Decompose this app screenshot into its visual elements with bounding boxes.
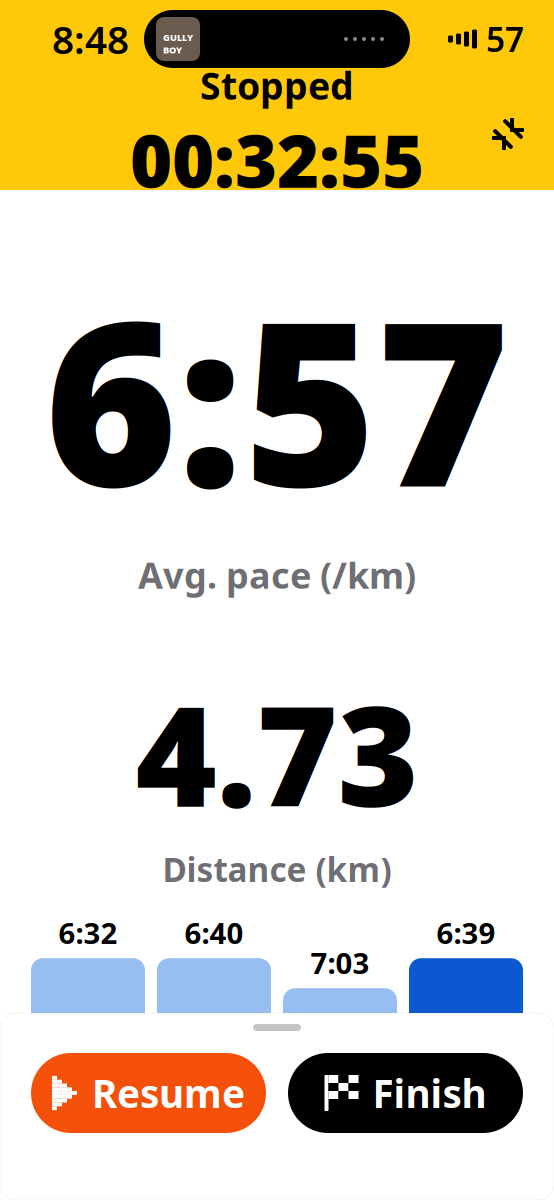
- staticText: 6:57: [44, 248, 509, 549]
- staticText: Splits (km): [189, 1085, 364, 1129]
- staticText: 6:39: [436, 913, 495, 952]
- staticText: 6:40: [184, 913, 243, 952]
- button[interactable]: Finish: [288, 1053, 523, 1133]
- staticText: Distance (km): [162, 847, 391, 891]
- staticText: 6:32: [58, 913, 117, 952]
- staticText: 7:03: [310, 943, 369, 982]
- staticText: Avg. pace (/km): [138, 551, 416, 599]
- staticText: GULLY BOY: [163, 31, 193, 56]
- staticText: 57: [486, 17, 524, 61]
- staticText: 4.73: [135, 661, 418, 845]
- staticText: 00:32:55: [130, 112, 424, 208]
- button[interactable]: Collapse: [480, 106, 536, 162]
- staticText: Stopped: [200, 60, 354, 110]
- staticText: Resume: [92, 1067, 245, 1119]
- staticText: 8:48: [52, 13, 129, 65]
- staticText: Finish: [372, 1067, 486, 1119]
- button[interactable]: Resume: [31, 1053, 266, 1133]
